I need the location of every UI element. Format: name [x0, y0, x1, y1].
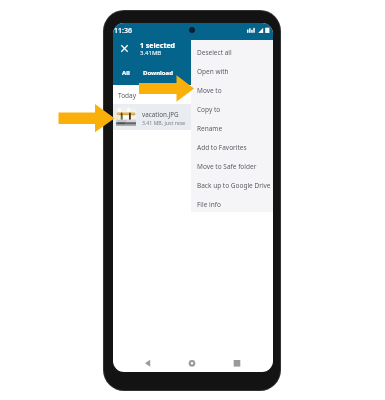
staticText: Open with	[197, 67, 229, 76]
staticText: Move to	[197, 86, 222, 95]
staticText: Copy to	[197, 105, 221, 114]
staticText: 3.41MB	[140, 49, 162, 57]
button[interactable]: Open with	[191, 62, 273, 81]
staticText: 1 selected	[140, 41, 176, 51]
staticText: 11:36	[114, 26, 132, 36]
staticText: Download	[143, 69, 173, 77]
button[interactable]: Copy to	[191, 100, 273, 119]
button[interactable]: Back up to Google Drive	[191, 176, 273, 195]
staticText: All	[122, 69, 130, 77]
button[interactable]: File info	[191, 195, 273, 214]
staticText: Deselect all	[197, 48, 232, 57]
staticText: File info	[197, 200, 221, 209]
staticText: Today	[118, 91, 137, 100]
button[interactable]: Home	[187, 358, 197, 368]
button[interactable]: Deselect all	[191, 43, 273, 62]
button[interactable]: Recents	[232, 358, 242, 368]
button[interactable]: Move to Safe folder	[191, 157, 273, 176]
button[interactable]: Rename	[191, 119, 273, 138]
staticText: Back up to Google Drive	[197, 181, 271, 190]
button[interactable]: Download	[140, 67, 176, 79]
staticText: vacation.JPG	[142, 110, 179, 119]
staticText: Rename	[197, 124, 223, 133]
button[interactable]: Back	[143, 358, 153, 368]
button[interactable]: All	[115, 67, 137, 79]
button[interactable]: Move to	[191, 81, 273, 100]
button[interactable]: Close	[118, 42, 131, 55]
button[interactable]: vacation.JPG	[113, 104, 273, 130]
staticText: 3.41 MB, just now	[142, 119, 185, 126]
button[interactable]: Add to Favorites	[191, 138, 273, 157]
staticText: Move to Safe folder	[197, 162, 257, 171]
staticText: Add to Favorites	[197, 143, 247, 152]
